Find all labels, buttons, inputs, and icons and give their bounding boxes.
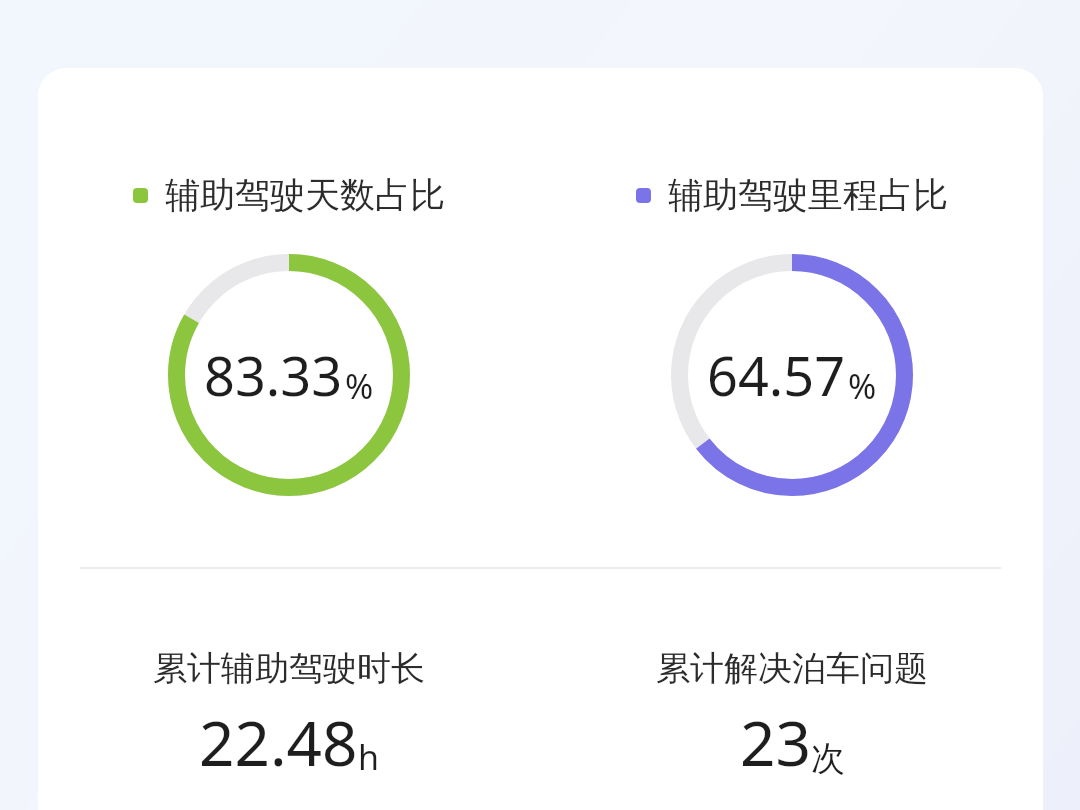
button[interactable]: 累计辅助驾驶时长 xyxy=(153,647,425,784)
other: 辅助驾驶里程占比 64.57% xyxy=(671,254,913,496)
staticText: 辅助驾驶里程占比 xyxy=(668,173,948,217)
staticText: 64.57 xyxy=(707,338,846,412)
staticText: 22.48 xyxy=(199,700,358,784)
other: 辅助驾驶天数占比 83.33% xyxy=(168,254,410,496)
staticText: 累计解决泊车问题 xyxy=(656,647,928,690)
button[interactable]: 辅助驾驶天数占比 xyxy=(133,173,445,217)
staticText: 累计辅助驾驶时长 xyxy=(153,647,425,690)
staticText: 23 xyxy=(740,700,811,784)
staticText: 次 xyxy=(811,737,845,780)
button[interactable]: 累计解决泊车问题 xyxy=(656,647,928,784)
button[interactable]: 辅助驾驶里程占比 xyxy=(636,173,948,217)
staticText: 辅助驾驶天数占比 xyxy=(165,173,445,217)
staticText: % xyxy=(345,363,374,409)
staticText: h xyxy=(358,734,380,780)
staticText: 83.33 xyxy=(204,338,343,412)
staticText: % xyxy=(848,363,877,409)
